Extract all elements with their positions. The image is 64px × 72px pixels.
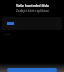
- staticText: Vaše kontrolní číslo: [16, 3, 49, 8]
- button[interactable]: Kód platnosti: [2, 17, 62, 30]
- staticText: Zrušit: [4, 32, 11, 35]
- staticText: Zadejte kód z aplikace: [16, 9, 49, 13]
- button[interactable]: [7, 68, 57, 72]
